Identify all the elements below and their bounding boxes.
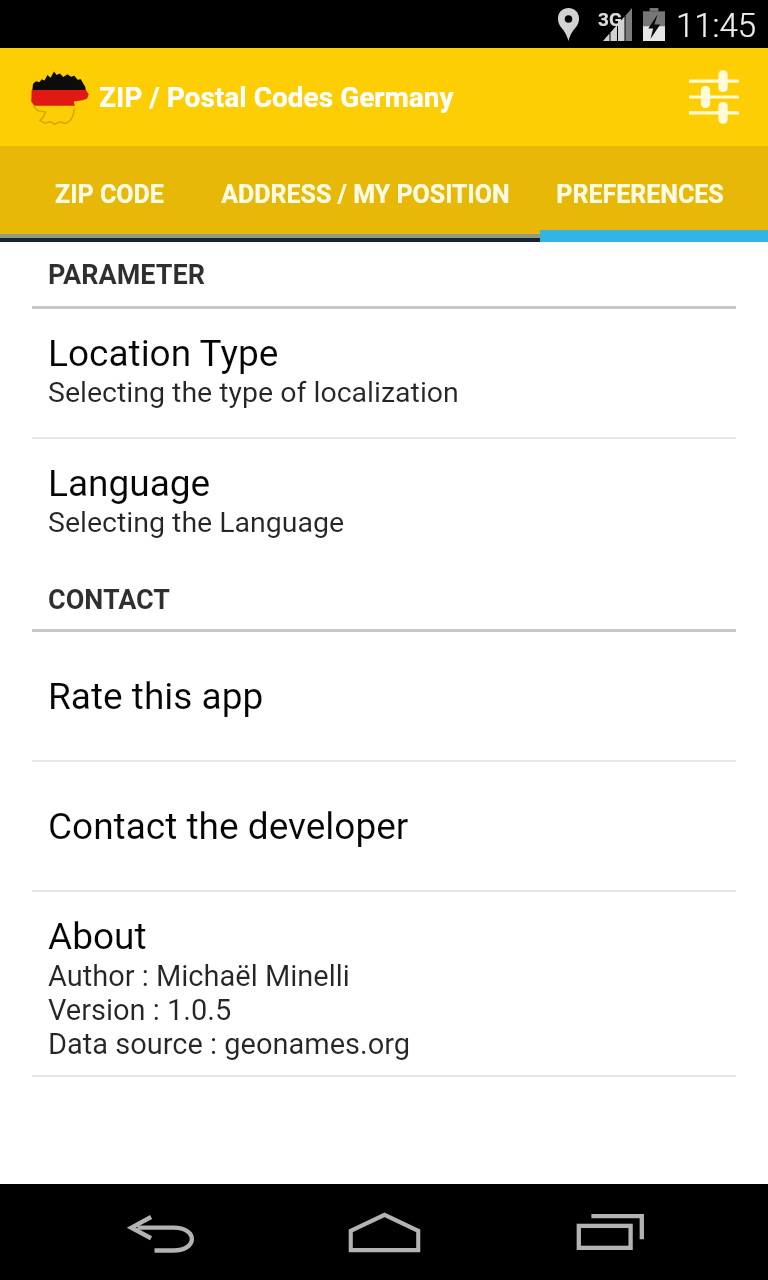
staticText: Contact the developer xyxy=(48,805,409,848)
staticText: Selecting the Language xyxy=(48,506,345,539)
staticText: 3G xyxy=(598,8,622,30)
button[interactable]: PREFERENCES xyxy=(512,146,768,242)
button[interactable]: Language xyxy=(0,439,768,564)
staticText: Author : Michaël Minelli Version : 1.0.5… xyxy=(48,959,411,1061)
button[interactable]: Settings xyxy=(676,59,752,135)
staticText: About xyxy=(48,915,147,958)
button[interactable]: About xyxy=(0,892,768,1075)
staticText: ZIP CODE xyxy=(55,180,164,209)
button[interactable]: Contact the developer xyxy=(0,762,768,890)
staticText: PARAMETER xyxy=(48,259,205,291)
button[interactable]: Location Type xyxy=(0,309,768,437)
button[interactable]: ZIP CODE xyxy=(0,146,219,242)
staticText: Location Type xyxy=(48,332,279,375)
staticText: 11:45 xyxy=(676,6,757,45)
button[interactable]: Rate this app xyxy=(0,632,768,760)
staticText: Rate this app xyxy=(48,675,264,718)
staticText: PREFERENCES xyxy=(556,180,724,209)
button[interactable]: ADDRESS / MY POSITION xyxy=(219,146,512,242)
staticText: Language xyxy=(48,462,211,505)
staticText: CONTACT xyxy=(48,584,171,616)
button[interactable]: Back xyxy=(116,1184,212,1280)
staticText: ZIP / Postal Codes Germany xyxy=(99,81,454,114)
button[interactable]: Home xyxy=(336,1184,432,1280)
staticText: ADDRESS / MY POSITION xyxy=(221,180,510,209)
button[interactable]: Recent apps xyxy=(563,1184,659,1280)
staticText: Selecting the type of localization xyxy=(48,376,459,409)
